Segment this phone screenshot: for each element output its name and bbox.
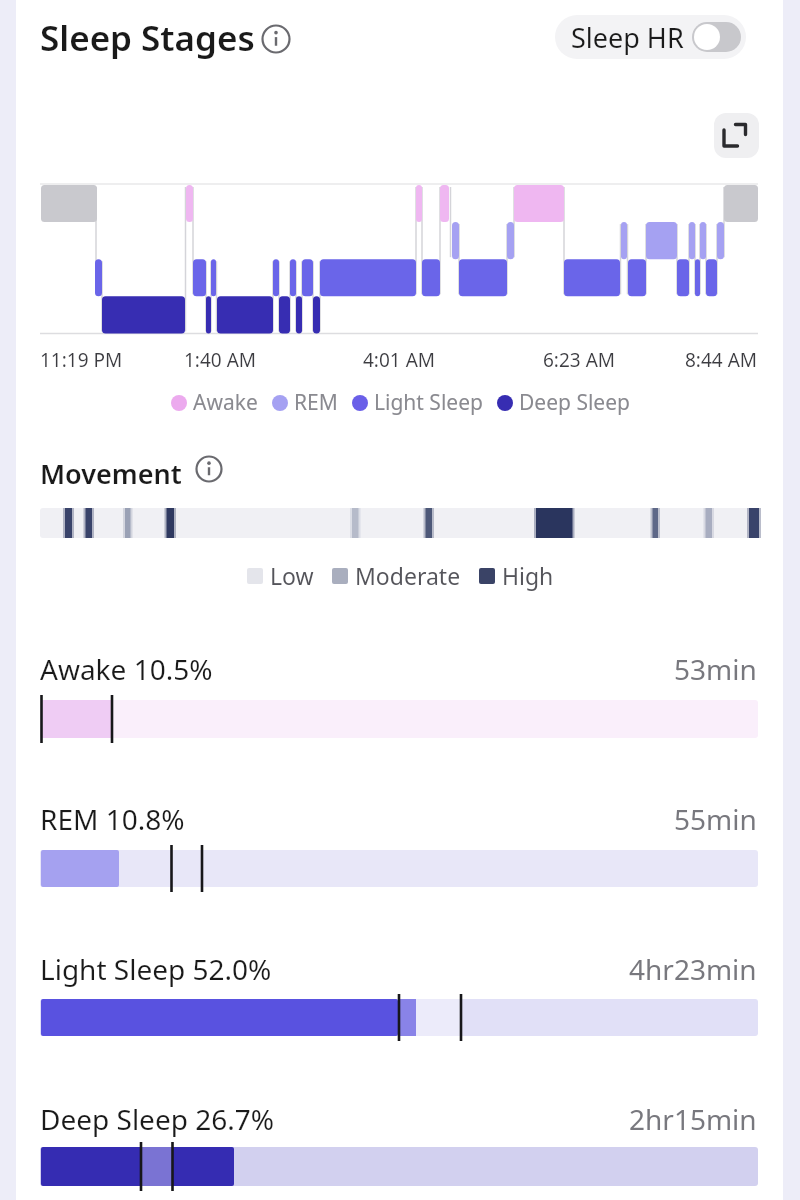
staticText: Light Sleep 52.0%: [40, 950, 272, 988]
button[interactable]: Sleep HR: [555, 15, 746, 59]
staticText: Awake: [193, 388, 258, 417]
staticText: Low: [270, 560, 314, 591]
staticText: 53min: [674, 650, 757, 688]
staticText: Sleep HR: [571, 19, 684, 56]
staticText: 6:23 AM: [543, 347, 616, 373]
staticText: 55min: [674, 800, 757, 838]
button[interactable]: [714, 113, 759, 158]
staticText: 8:44 AM: [685, 347, 758, 373]
staticText: REM 10.8%: [40, 800, 185, 838]
staticText: 4:01 AM: [363, 347, 436, 373]
staticText: 4hr23min: [629, 950, 757, 988]
staticText: Awake 10.5%: [40, 650, 213, 688]
staticText: High: [502, 560, 554, 591]
staticText: 2hr15min: [629, 1100, 757, 1138]
staticText: 11:19 PM: [40, 347, 123, 373]
staticText: Moderate: [355, 560, 461, 591]
button[interactable]: [196, 456, 222, 482]
button[interactable]: [262, 25, 290, 53]
staticText: Movement: [40, 455, 182, 492]
staticText: REM: [294, 388, 338, 417]
staticText: Sleep Stages: [40, 14, 255, 62]
staticText: 1:40 AM: [184, 347, 257, 373]
staticText: Light Sleep: [374, 388, 483, 417]
staticText: Deep Sleep 26.7%: [40, 1100, 275, 1138]
staticText: Deep Sleep: [519, 388, 630, 417]
